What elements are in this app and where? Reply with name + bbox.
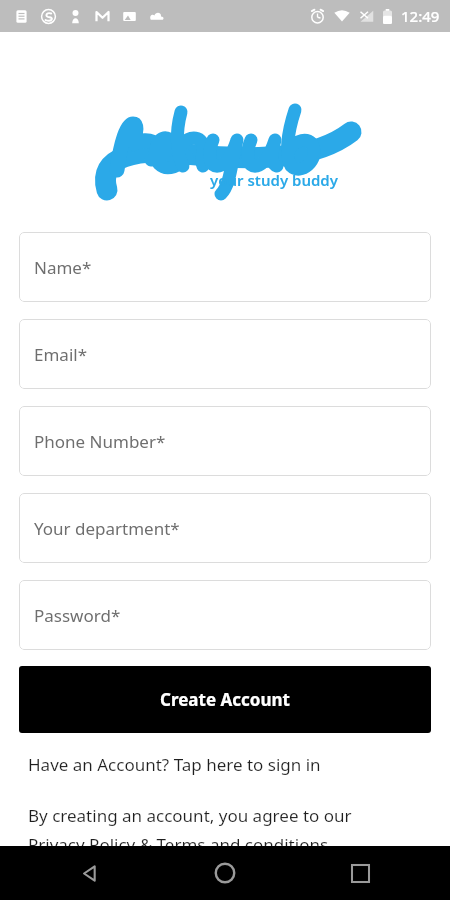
button[interactable]: Back <box>45 846 135 900</box>
staticText: Password* <box>34 604 121 627</box>
staticText: Have an Account? Tap here to sign in <box>28 753 321 776</box>
button[interactable]: Name* <box>19 232 431 302</box>
button[interactable]: Phone Number* <box>19 406 431 476</box>
staticText: Your department* <box>34 517 180 540</box>
staticText: Name* <box>34 256 92 279</box>
staticText: By creating an account, you agree to our <box>28 804 352 827</box>
button[interactable]: Home <box>180 846 270 900</box>
staticText: 12:49 <box>401 6 440 26</box>
staticText: Phone Number* <box>34 430 166 453</box>
button[interactable]: Your department* <box>19 493 431 563</box>
staticText: your study buddy <box>210 170 338 190</box>
button[interactable]: Create Account <box>19 666 431 733</box>
staticText: Create Account <box>160 688 290 711</box>
button[interactable]: Have an Account? Tap here to sign in <box>0 749 450 780</box>
button[interactable]: Password* <box>19 580 431 650</box>
button[interactable]: Email* <box>19 319 431 389</box>
staticText: Privacy Policy & Terms and conditions <box>28 833 329 856</box>
staticText: Email* <box>34 343 88 366</box>
button[interactable]: Recent apps <box>315 846 405 900</box>
